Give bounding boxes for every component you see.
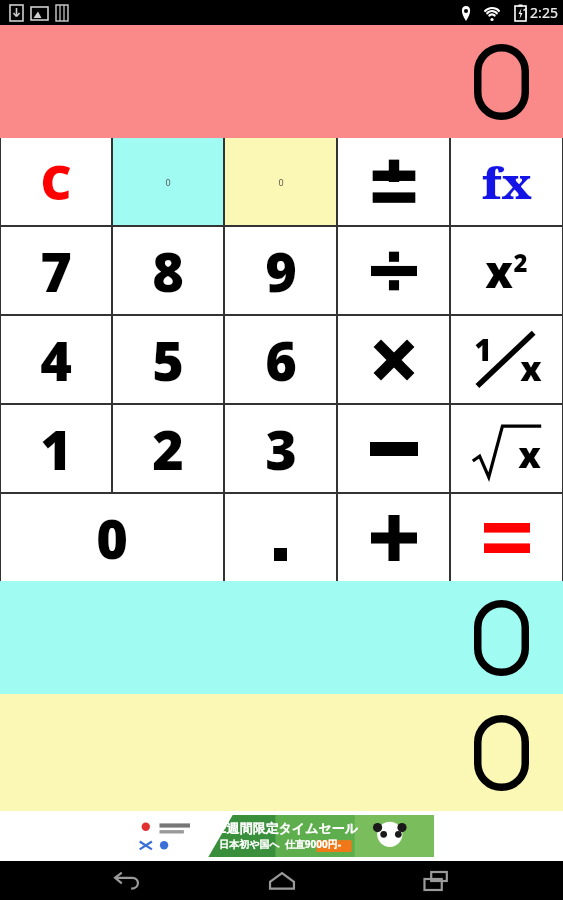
staticText: 2週間限定タイムセール	[219, 819, 358, 837]
staticText: 2	[513, 246, 528, 279]
button[interactable]: Equals	[451, 494, 562, 581]
staticText: 4	[40, 323, 72, 397]
staticText: x	[485, 241, 513, 301]
button[interactable]: Advertisement	[129, 815, 434, 857]
staticText: 2	[152, 412, 184, 486]
staticText: 0	[165, 176, 171, 188]
staticText: 0	[96, 501, 128, 575]
button[interactable]: 1	[1, 405, 111, 492]
button[interactable]: Home	[254, 861, 310, 900]
button[interactable]: 6	[225, 316, 336, 403]
button[interactable]: Plus minus sign	[338, 138, 449, 225]
button[interactable]: Back	[99, 861, 155, 900]
staticText: 9	[265, 234, 297, 308]
staticText: 12:25	[522, 3, 558, 22]
staticText: 日本初や国へ 仕直9000円-	[219, 837, 341, 851]
button[interactable]: 5	[113, 316, 223, 403]
button[interactable]	[0, 694, 563, 811]
staticText: 0	[278, 176, 284, 188]
staticText: 1	[474, 329, 492, 370]
staticText: 8	[152, 234, 184, 308]
button[interactable]: Divide	[338, 227, 449, 314]
button[interactable]: 3	[225, 405, 336, 492]
button[interactable]: fx functions	[451, 138, 562, 225]
button[interactable]: 2	[113, 405, 223, 492]
staticText: 1	[40, 412, 72, 486]
button[interactable]: x squared	[451, 227, 562, 314]
button[interactable]: Memory	[225, 138, 336, 225]
staticText: 7	[40, 234, 72, 308]
button[interactable]: C	[1, 138, 111, 225]
staticText: C	[40, 149, 72, 214]
button[interactable]: 7	[1, 227, 111, 314]
button[interactable]: 0	[1, 494, 223, 581]
button[interactable]	[0, 581, 563, 694]
button[interactable]: Memory	[113, 138, 223, 225]
button[interactable]: 8	[113, 227, 223, 314]
button[interactable]: Recents	[408, 861, 464, 900]
staticText: x	[520, 345, 542, 391]
button[interactable]	[225, 494, 336, 581]
button[interactable]: Square root of x	[451, 405, 562, 492]
staticText: 6	[265, 323, 297, 397]
button[interactable]: Minus	[338, 405, 449, 492]
button[interactable]: 9	[225, 227, 336, 314]
button[interactable]: 4	[1, 316, 111, 403]
staticText: x	[518, 430, 541, 479]
button[interactable]: Multiply	[338, 316, 449, 403]
staticText: 3	[265, 412, 297, 486]
button[interactable]: Plus	[338, 494, 449, 581]
staticText: 5	[152, 323, 184, 397]
button[interactable]: One over x	[451, 316, 562, 403]
staticText: fx	[482, 152, 532, 212]
